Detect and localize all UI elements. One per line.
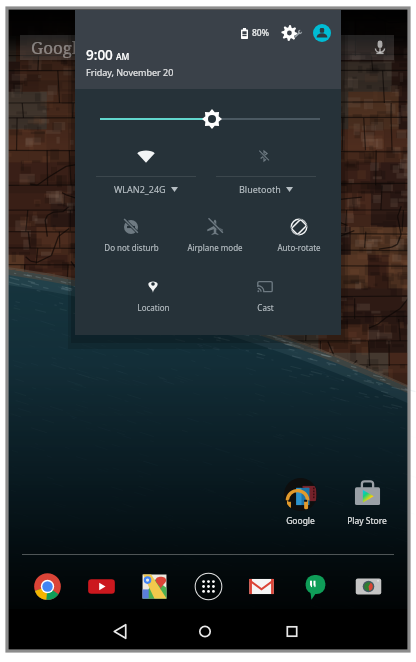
staticText: Location (137, 302, 170, 313)
button[interactable]: Bluetooth (207, 138, 325, 198)
button[interactable]: Google (20, 35, 394, 60)
button[interactable]: Do not disturb (89, 209, 173, 267)
staticText: WLAN2_24G (114, 183, 166, 195)
staticText: Google (286, 515, 315, 527)
button[interactable]: Hangouts (301, 572, 330, 601)
button[interactable]: Cast (223, 269, 307, 327)
button[interactable]: User profile (313, 24, 331, 42)
button[interactable]: Recent apps (281, 623, 303, 640)
staticText: Airplane mode (187, 242, 243, 253)
staticText: AM (116, 51, 130, 63)
button[interactable]: Camera (354, 572, 383, 601)
button[interactable]: Google (276, 478, 324, 530)
button[interactable]: WLAN2_24G (87, 138, 205, 198)
button[interactable]: Auto-rotate (257, 209, 341, 267)
button[interactable]: Back (109, 623, 131, 640)
button[interactable]: Airplane mode (173, 209, 257, 267)
button[interactable]: Play Store (343, 478, 391, 530)
button[interactable]: Settings (281, 23, 307, 43)
button[interactable]: Chrome (33, 572, 62, 601)
button[interactable]: Home (194, 623, 216, 640)
staticText: 9:00 (86, 46, 113, 64)
button[interactable]: Location (111, 269, 195, 327)
button[interactable]: Maps (140, 572, 169, 601)
button[interactable]: All apps (194, 572, 223, 601)
staticText: Google (31, 36, 87, 59)
staticText: Do not disturb (104, 242, 159, 253)
staticText: Bluetooth (239, 183, 281, 195)
staticText: Friday, November 20 (86, 66, 174, 78)
staticText: Play Store (347, 515, 387, 527)
button[interactable]: Brightness (75, 108, 341, 130)
staticText: Cast (257, 302, 274, 313)
staticText: Auto-rotate (277, 242, 321, 253)
staticText: 80% (252, 27, 269, 39)
button[interactable]: Gmail (247, 572, 276, 601)
button[interactable]: YouTube (87, 572, 116, 601)
button[interactable]: Voice search (374, 40, 386, 55)
